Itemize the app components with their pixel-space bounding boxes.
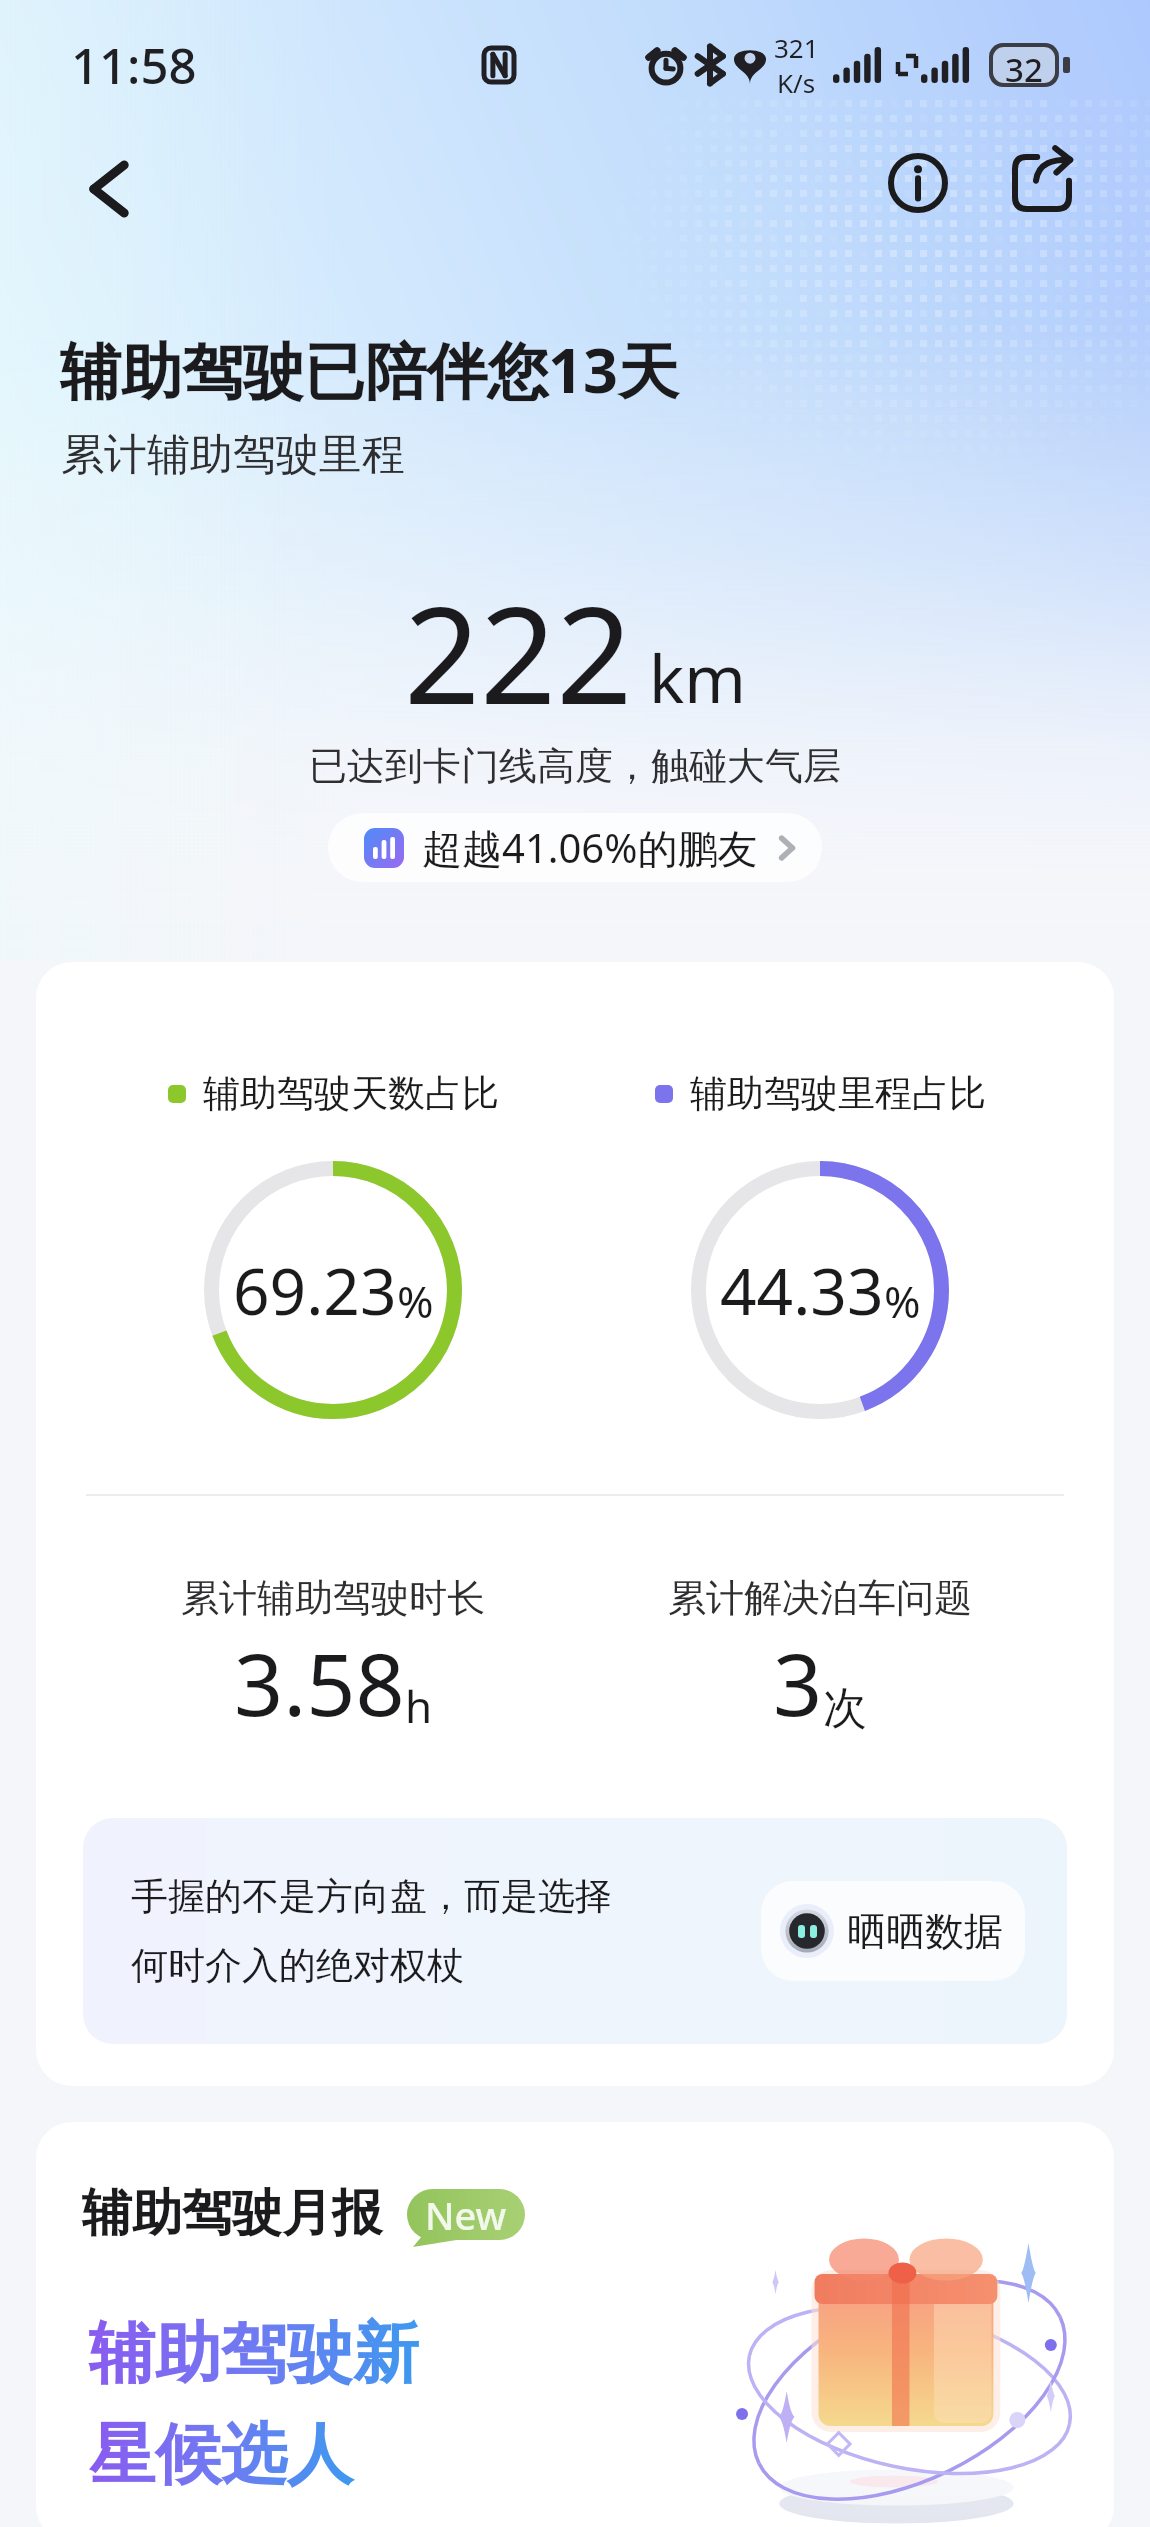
button[interactable]: Share — [995, 136, 1089, 230]
staticText: km — [649, 632, 746, 722]
staticText: 星候选人 — [89, 2413, 353, 2496]
staticText: h — [405, 1676, 433, 1736]
staticText: 次 — [823, 1681, 867, 1736]
staticText: 辅助驾驶天数占比 — [203, 1070, 499, 1117]
staticText: 晒晒数据 — [847, 1907, 1003, 1956]
staticText: 3 — [773, 1624, 823, 1741]
staticText: 累计辅助驾驶时长 — [181, 1574, 485, 1622]
staticText: 222 — [404, 562, 633, 743]
button[interactable]: 超越41.06%的鹏友 — [328, 813, 822, 882]
button[interactable]: Back — [62, 142, 156, 236]
staticText: 已达到卡门线高度，触碰大气层 — [309, 742, 841, 790]
staticText: 辅助驾驶月报 — [82, 2182, 382, 2245]
staticText: 69.23 — [233, 1247, 397, 1334]
staticText: 321 — [774, 30, 819, 65]
staticText: 辅助驾驶里程占比 — [690, 1070, 986, 1117]
button[interactable]: 辅助驾驶月报 — [36, 2122, 1114, 2527]
staticText: 辅助驾驶已陪伴您13天 — [60, 328, 679, 411]
staticText: % — [397, 1271, 434, 1331]
staticText: New — [425, 2189, 507, 2240]
staticText: 辅助驾驶新 — [89, 2312, 419, 2395]
staticText: % — [884, 1271, 921, 1331]
staticText: 累计辅助驾驶里程 — [61, 428, 405, 482]
button[interactable]: 晒晒数据 — [761, 1881, 1025, 1981]
staticText: 手握的不是方向盘，而是选择 — [131, 1873, 612, 1920]
staticText: 44.33 — [720, 1247, 884, 1334]
staticText: 11:58 — [71, 32, 197, 99]
staticText: 何时介入的绝对权杖 — [131, 1942, 464, 1989]
staticText: 超越41.06%的鹏友 — [422, 820, 758, 875]
staticText: K/s — [777, 65, 816, 100]
staticText: 累计解决泊车问题 — [668, 1574, 972, 1622]
staticText: 3.58 — [234, 1624, 405, 1741]
staticText: 32 — [1005, 47, 1043, 83]
button[interactable]: Info — [871, 136, 965, 230]
